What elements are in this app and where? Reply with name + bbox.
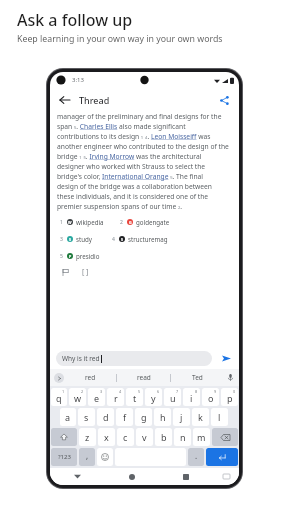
button[interactable]: h: [154, 408, 171, 426]
button[interactable]: k: [192, 408, 209, 426]
button[interactable]: Expand: [54, 373, 64, 383]
button[interactable]: Emoji: [97, 448, 113, 466]
staticText: e: [94, 392, 100, 404]
button[interactable]: 6: [145, 388, 162, 406]
button[interactable]: Shift: [51, 428, 77, 446]
button[interactable]: d: [97, 408, 114, 426]
button[interactable]: 2: [119, 217, 171, 227]
button[interactable]: Recents: [159, 468, 213, 485]
button[interactable]: 3: [59, 234, 93, 244]
staticText: c: [123, 431, 128, 443]
button[interactable]: Send: [219, 351, 233, 365]
staticText: ?123: [58, 453, 71, 461]
button[interactable]: s: [78, 408, 95, 426]
staticText: structuremag: [128, 235, 168, 243]
button[interactable]: a: [60, 408, 76, 426]
staticText: v: [142, 431, 147, 443]
button[interactable]: 5: [59, 251, 101, 261]
button[interactable]: 3: [88, 388, 105, 406]
button[interactable]: Hide keyboard: [213, 468, 239, 485]
button[interactable]: 5: [126, 388, 143, 406]
button[interactable]: 9: [202, 388, 219, 406]
staticText: bridge 1 5. Irving Morrow was the archit…: [57, 152, 202, 162]
staticText: g: [141, 411, 147, 423]
button[interactable]: g: [135, 408, 152, 426]
button[interactable]: 1: [51, 388, 67, 406]
staticText: Why is it red: [62, 354, 100, 363]
button[interactable]: Comma: [79, 448, 95, 466]
button[interactable]: 1: [59, 217, 105, 227]
staticText: z: [85, 431, 90, 443]
staticText: .: [195, 450, 198, 461]
staticText: x: [104, 431, 109, 443]
button[interactable]: Enter: [206, 448, 238, 466]
staticText: 3: [100, 389, 103, 394]
staticText: p: [227, 392, 233, 404]
staticText: Ted: [192, 373, 203, 382]
button[interactable]: 8: [183, 388, 200, 406]
staticText: [ ]: [82, 267, 89, 277]
button[interactable]: Voice input: [224, 371, 237, 384]
button[interactable]: ?123: [51, 448, 77, 466]
staticText: contributions to its design 1 4. Leon Mo…: [57, 132, 211, 142]
staticText: 9: [214, 389, 217, 394]
button[interactable]: Why is it red: [56, 351, 212, 366]
button[interactable]: f: [116, 408, 133, 426]
button[interactable]: Period: [188, 448, 204, 466]
button[interactable]: Ted: [171, 369, 224, 386]
staticText: 4: [119, 389, 122, 394]
staticText: u: [170, 392, 176, 404]
button[interactable]: 2: [69, 388, 86, 406]
staticText: i: [190, 392, 193, 404]
button[interactable]: l: [211, 408, 228, 426]
button[interactable]: n: [174, 428, 191, 446]
button[interactable]: Flag: [59, 266, 71, 278]
button[interactable]: z: [79, 428, 96, 446]
staticText: W: [68, 220, 72, 225]
staticText: l: [218, 411, 221, 423]
staticText: another engineer who contributed to the …: [57, 142, 229, 152]
button[interactable]: read: [117, 369, 170, 386]
button[interactable]: red: [64, 369, 116, 386]
staticText: 5: [138, 389, 141, 394]
staticText: 4: [112, 236, 115, 243]
staticText: r: [114, 392, 118, 404]
button[interactable]: 7: [164, 388, 181, 406]
staticText: span 5. Charles Ellis also made signific…: [57, 122, 186, 132]
staticText: n: [180, 431, 186, 443]
staticText: Thread: [79, 94, 110, 106]
staticText: study: [76, 235, 92, 243]
staticText: 6: [157, 389, 160, 394]
staticText: h: [160, 411, 166, 423]
button[interactable]: c: [117, 428, 134, 446]
staticText: b: [161, 431, 167, 443]
staticText: G: [129, 220, 132, 225]
button[interactable]: 4: [111, 234, 169, 244]
staticText: t: [133, 392, 137, 404]
button[interactable]: Share: [216, 92, 232, 108]
button[interactable]: x: [98, 428, 115, 446]
staticText: q: [56, 392, 62, 404]
button[interactable]: v: [136, 428, 153, 446]
button[interactable]: Backspace: [212, 428, 238, 446]
staticText: 1: [62, 389, 65, 394]
button[interactable]: Back: [57, 92, 73, 108]
button[interactable]: Copy: [79, 266, 91, 278]
button[interactable]: Back: [50, 468, 105, 485]
staticText: Ask a follow up: [17, 9, 133, 31]
button[interactable]: 4: [107, 388, 124, 406]
staticText: 1: [60, 219, 63, 226]
button[interactable]: Home: [105, 468, 159, 485]
staticText: design of the bridge was a collaboration…: [57, 182, 213, 192]
button[interactable]: m: [193, 428, 210, 446]
staticText: f: [123, 411, 127, 423]
button[interactable]: 0: [221, 388, 238, 406]
button[interactable]: j: [173, 408, 190, 426]
button[interactable]: b: [155, 428, 172, 446]
staticText: d: [103, 411, 109, 423]
staticText: S: [121, 237, 123, 242]
staticText: 3:13: [72, 76, 84, 84]
staticText: wikipedia: [76, 218, 104, 226]
staticText: 8: [195, 389, 198, 394]
